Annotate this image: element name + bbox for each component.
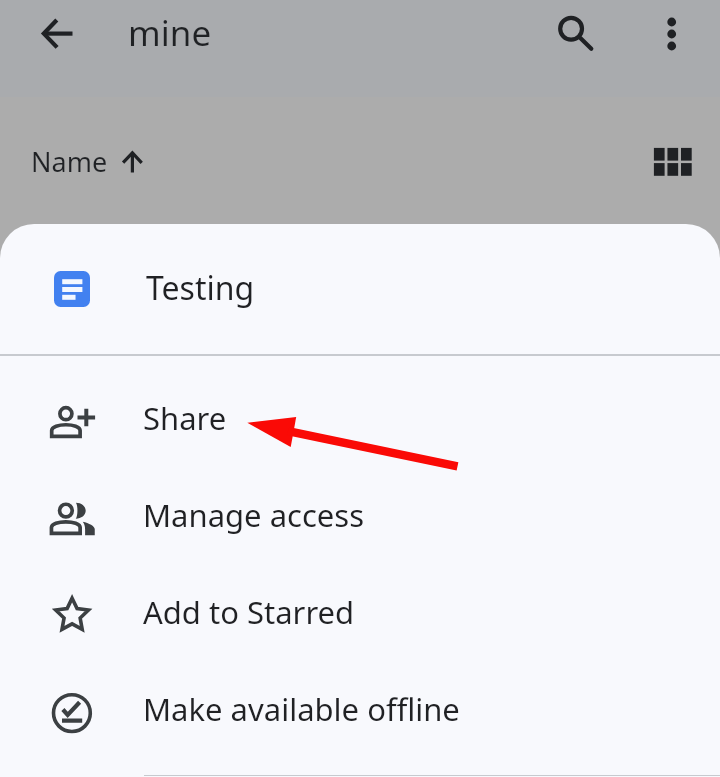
- staticText: Share: [143, 397, 227, 439]
- button[interactable]: Manage access: [0, 470, 720, 567]
- button[interactable]: Add to Starred: [0, 567, 720, 664]
- staticText: Testing: [146, 266, 255, 310]
- button[interactable]: Grid view: [648, 143, 696, 191]
- staticText: mine: [128, 9, 212, 57]
- button[interactable]: Back: [32, 9, 80, 57]
- button[interactable]: Search: [551, 9, 599, 57]
- button[interactable]: Make available offline: [0, 664, 720, 761]
- button[interactable]: More options: [648, 10, 696, 58]
- staticText: Add to Starred: [143, 591, 355, 633]
- staticText: Manage access: [143, 494, 364, 536]
- staticText: Name: [31, 143, 108, 180]
- staticText: Make available offline: [143, 688, 460, 730]
- button[interactable]: Testing: [0, 224, 720, 354]
- button[interactable]: Share: [0, 373, 720, 470]
- button[interactable]: Name: [21, 136, 154, 189]
